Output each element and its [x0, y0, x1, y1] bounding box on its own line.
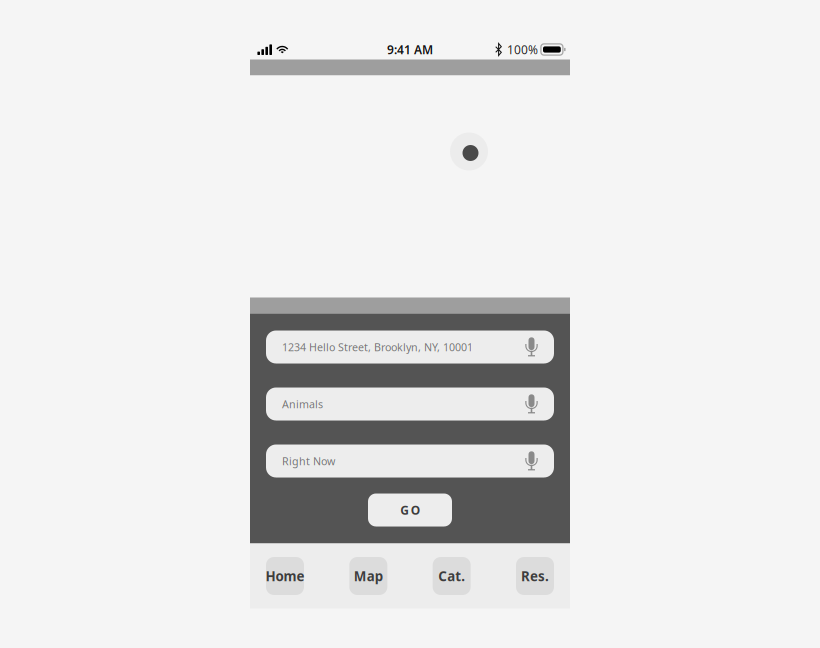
- staticText: O: [411, 502, 420, 518]
- staticText: Right Now: [282, 454, 335, 468]
- staticText: Map: [354, 567, 383, 585]
- staticText: Animals: [282, 397, 323, 411]
- staticText: Res.: [521, 567, 549, 585]
- button[interactable]: 1234 Hello Street, Brooklyn, NY, 10001: [266, 330, 554, 363]
- staticText: Cat.: [438, 567, 465, 585]
- staticText: 1234 Hello Street, Brooklyn, NY, 10001: [282, 340, 473, 354]
- staticText: 100%: [507, 41, 538, 57]
- button[interactable]: Home: [266, 557, 304, 595]
- staticText: Home: [265, 567, 304, 585]
- button[interactable]: Cat.: [433, 557, 471, 595]
- staticText: G: [400, 502, 409, 518]
- button[interactable]: Animals: [266, 387, 554, 420]
- button[interactable]: Map: [349, 557, 387, 595]
- button[interactable]: Res.: [516, 557, 554, 595]
- staticText: 9:41 AM: [387, 41, 433, 57]
- button[interactable]: Right Now: [266, 444, 554, 477]
- button[interactable]: G: [368, 493, 452, 526]
